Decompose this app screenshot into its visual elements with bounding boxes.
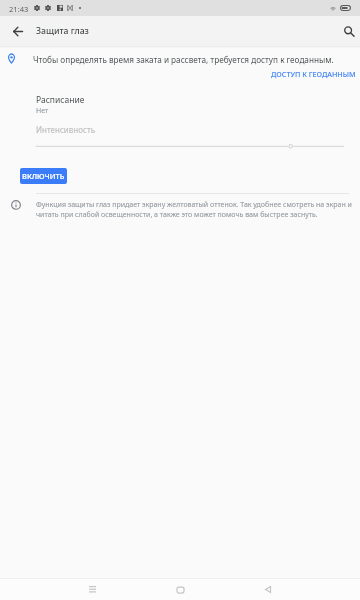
- staticText: Защита глаз: [36, 25, 89, 37]
- button[interactable]: Intensity slider: [0, 140, 360, 153]
- staticText: Нет: [36, 106, 49, 116]
- staticText: Интенсивность: [36, 124, 96, 135]
- button[interactable]: Back: [4, 16, 32, 46]
- button[interactable]: ДОСТУП К ГЕОДАННЫМ: [268, 67, 359, 81]
- staticText: Функция защиты глаз придает экрану желто…: [36, 200, 353, 219]
- staticText: Расписание: [36, 94, 85, 106]
- button[interactable]: Back: [248, 579, 288, 600]
- button[interactable]: Расписание: [0, 92, 360, 119]
- staticText: 21:43: [9, 4, 29, 14]
- staticText: Чтобы определять время заката и рассвета…: [33, 54, 334, 65]
- button[interactable]: Search: [332, 16, 360, 46]
- button[interactable]: Home: [160, 579, 200, 600]
- staticText: ВКЛЮЧИТЬ: [22, 171, 65, 181]
- staticText: ДОСТУП К ГЕОДАННЫМ: [271, 69, 356, 79]
- button[interactable]: Recent apps: [72, 579, 112, 600]
- button[interactable]: ВКЛЮЧИТЬ: [20, 168, 67, 184]
